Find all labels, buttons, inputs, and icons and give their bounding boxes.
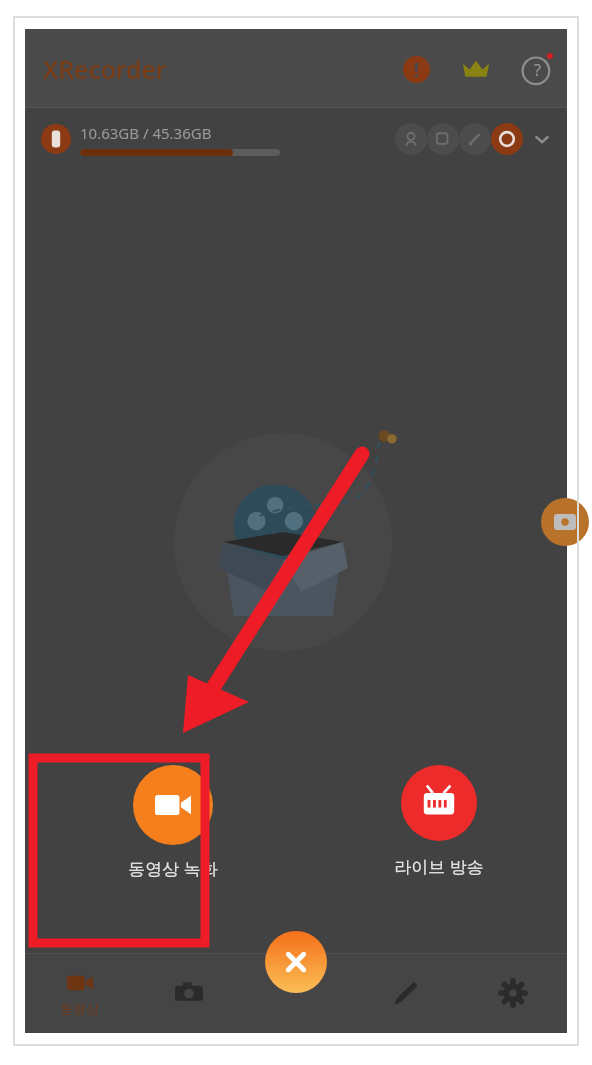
button[interactable]: Help xyxy=(519,51,555,87)
staticText: 동영상 녹화 xyxy=(128,857,218,880)
staticText: 동영상 xyxy=(60,1000,99,1016)
button[interactable]: Edit xyxy=(351,953,459,1033)
button[interactable]: 라이브 방송 xyxy=(369,765,509,878)
button[interactable]: Close xyxy=(265,931,327,993)
button[interactable]: Screenshot xyxy=(134,953,243,1033)
button[interactable]: Alert xyxy=(399,52,433,86)
button[interactable]: Tool xyxy=(491,123,523,155)
button[interactable]: Premium xyxy=(459,52,493,86)
staticText: 10.63GB / 45.36GB xyxy=(80,123,212,143)
button[interactable]: Tool xyxy=(395,123,427,155)
button[interactable]: 동영상 녹화 xyxy=(103,765,243,880)
button[interactable]: Tool xyxy=(427,123,459,155)
button[interactable]: Expand xyxy=(529,126,555,152)
button[interactable]: Tool xyxy=(459,123,491,155)
button[interactable]: Settings xyxy=(459,953,567,1033)
staticText: XRecorder xyxy=(43,52,167,86)
button[interactable]: Floating recorder xyxy=(541,498,589,546)
staticText: ? xyxy=(534,59,541,81)
staticText: 라이브 방송 xyxy=(394,855,484,878)
button[interactable]: 동영상 xyxy=(25,953,134,1033)
